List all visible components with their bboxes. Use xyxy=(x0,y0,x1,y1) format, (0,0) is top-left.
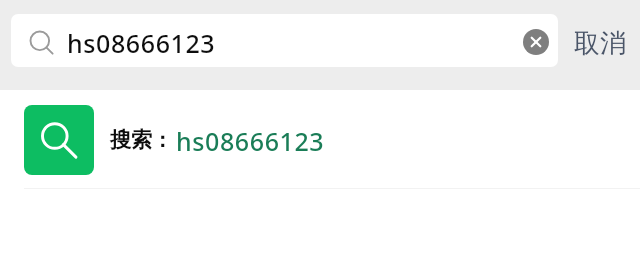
staticText: 搜索： xyxy=(110,127,173,153)
button[interactable]: 搜索： xyxy=(0,90,640,189)
staticText: 取消 xyxy=(574,27,626,60)
button[interactable]: 取消 xyxy=(560,17,640,70)
staticText: hs08666123 xyxy=(67,26,216,60)
button[interactable]: Clear text xyxy=(515,20,557,62)
button[interactable]: hs08666123 xyxy=(11,14,558,67)
staticText: hs08666123 xyxy=(176,124,325,158)
